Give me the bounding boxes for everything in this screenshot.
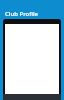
staticText: Club Profile bbox=[5, 10, 39, 18]
